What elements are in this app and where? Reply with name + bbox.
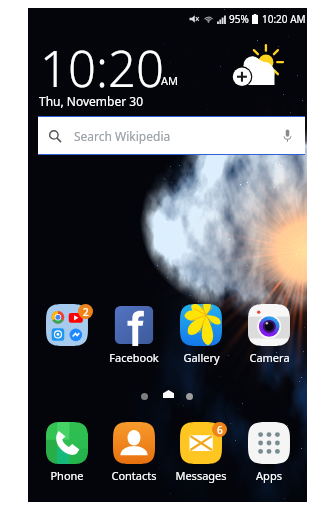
staticText: Camera xyxy=(249,350,290,365)
staticText: Search Wikipedia xyxy=(74,128,171,144)
button[interactable] xyxy=(172,418,230,486)
button[interactable]: Folder xyxy=(38,300,96,368)
button[interactable]: Weather xyxy=(232,47,283,88)
staticText: 10:20 AM xyxy=(262,12,306,26)
staticText: 6 xyxy=(217,423,223,437)
button[interactable] xyxy=(105,300,163,368)
button[interactable]: Home screen xyxy=(162,384,175,404)
staticText: Phone xyxy=(50,468,84,483)
staticText: Facebook xyxy=(109,350,159,365)
staticText: Thu, November 30 xyxy=(39,93,144,109)
staticText: Contacts xyxy=(111,468,157,483)
staticText: Messages xyxy=(175,468,227,483)
button[interactable] xyxy=(172,300,230,368)
button[interactable] xyxy=(240,300,298,368)
staticText: 2 xyxy=(83,305,89,319)
staticText: 10:20 xyxy=(40,35,164,102)
button[interactable] xyxy=(38,418,96,486)
staticText: AM xyxy=(161,73,179,88)
button[interactable] xyxy=(105,418,163,486)
button[interactable]: Search Wikipedia xyxy=(38,117,305,154)
staticText: Gallery xyxy=(183,350,220,365)
button[interactable] xyxy=(240,418,298,486)
staticText: Apps xyxy=(256,468,282,483)
staticText: 95% xyxy=(229,12,249,26)
